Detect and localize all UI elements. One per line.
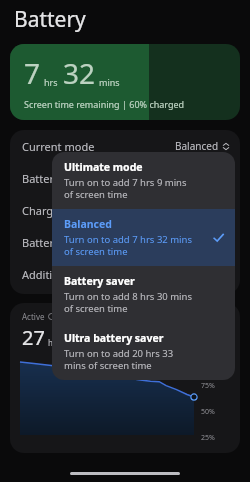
staticText: Charging optimisation bbox=[22, 203, 138, 218]
button[interactable]: Additional settings bbox=[10, 258, 240, 290]
staticText: Turn on to add 7 hrs 32 mins of screen t… bbox=[64, 233, 196, 258]
staticText: 27 bbox=[22, 324, 45, 351]
staticText: hrs bbox=[44, 76, 58, 88]
button[interactable]: Battery saver bbox=[52, 266, 235, 323]
other: Info bbox=[48, 313, 55, 320]
button[interactable]: Ultimate mode bbox=[52, 152, 235, 209]
staticText: Ultimate mode bbox=[64, 160, 143, 174]
staticText: mins bbox=[99, 76, 120, 88]
staticText: 25% bbox=[201, 433, 215, 443]
staticText: Additional settings bbox=[22, 267, 119, 282]
staticText: Ultra battery saver bbox=[64, 331, 164, 345]
staticText: 32 bbox=[63, 54, 96, 92]
button[interactable]: Charging optimisation bbox=[10, 194, 240, 226]
staticText: Battery saver bbox=[64, 274, 135, 288]
staticText: Balanced bbox=[64, 217, 112, 231]
button[interactable]: Active bbox=[10, 303, 240, 453]
staticText: mins bbox=[91, 337, 110, 348]
button[interactable]: Current mode bbox=[10, 130, 240, 162]
staticText: Battery bbox=[14, 5, 86, 34]
staticText: Balanced bbox=[175, 139, 219, 153]
staticText: 75% bbox=[201, 381, 215, 391]
button[interactable]: Balanced bbox=[52, 209, 235, 266]
staticText: Battery usage bbox=[22, 171, 94, 186]
button[interactable]: Battery usage bbox=[10, 162, 240, 194]
staticText: 7 bbox=[24, 54, 41, 92]
staticText: Turn on to add 20 hrs 33 mins of screen … bbox=[64, 347, 196, 372]
staticText: Battery protection bbox=[22, 235, 116, 250]
staticText: Turn on to add 8 hrs 30 mins of screen t… bbox=[64, 290, 196, 315]
button[interactable]: 7 bbox=[10, 44, 240, 120]
staticText: Active bbox=[22, 311, 45, 322]
staticText: Screen time remaining | 60% charged bbox=[24, 98, 185, 110]
button[interactable]: Ultra battery saver bbox=[52, 323, 235, 380]
button[interactable]: Battery protection bbox=[10, 226, 240, 258]
staticText: Turn on to add 7 hrs 9 mins of screen ti… bbox=[64, 176, 196, 201]
staticText: 50% bbox=[201, 407, 215, 417]
staticText: 55 bbox=[65, 324, 88, 351]
staticText: Current mode bbox=[22, 139, 95, 154]
staticText: hrs bbox=[48, 337, 61, 348]
